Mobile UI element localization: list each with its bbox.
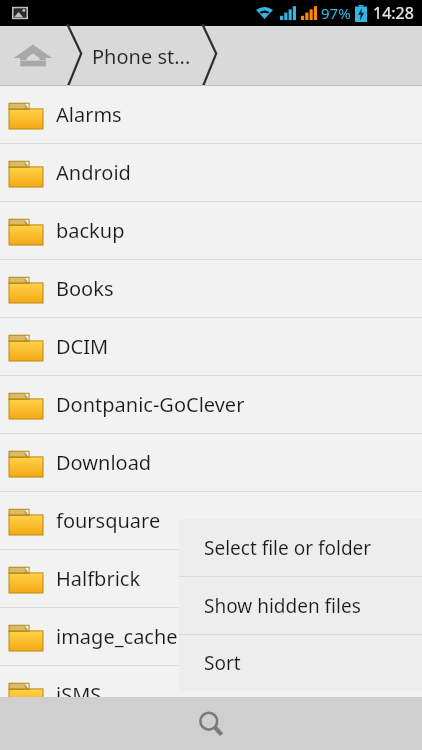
button[interactable]: Android xyxy=(0,144,422,201)
button[interactable]: Halfbrick xyxy=(0,550,422,607)
staticText: Sort xyxy=(204,650,241,676)
staticText: Download xyxy=(56,449,152,476)
staticText: Halfbrick xyxy=(56,565,141,592)
staticText: backup xyxy=(56,217,125,244)
staticText: foursquare xyxy=(56,507,161,534)
staticText: Show hidden files xyxy=(204,593,361,619)
button[interactable]: Home xyxy=(0,26,66,86)
staticText: 14:28 xyxy=(373,2,414,24)
staticText: Books xyxy=(56,275,114,302)
button[interactable]: Show hidden files xyxy=(179,577,422,634)
button[interactable]: Books xyxy=(0,260,422,317)
staticText: 97% xyxy=(321,3,351,23)
staticText: DCIM xyxy=(56,333,109,360)
staticText: Alarms xyxy=(56,101,122,128)
staticText: image_cache xyxy=(56,623,178,650)
button[interactable]: Sort xyxy=(179,635,422,691)
staticText: iSMS xyxy=(56,681,102,708)
staticText: Android xyxy=(56,159,131,186)
button[interactable]: DCIM xyxy=(0,318,422,375)
button[interactable]: Dontpanic-GoClever xyxy=(0,376,422,433)
button[interactable]: Download xyxy=(0,434,422,491)
staticText: Select file or folder xyxy=(204,535,372,561)
button[interactable]: iSMS xyxy=(0,666,422,723)
button[interactable]: backup xyxy=(0,202,422,259)
button[interactable]: Phone st... xyxy=(82,26,201,86)
button[interactable]: Alarms xyxy=(0,86,422,143)
button[interactable]: Select file or folder xyxy=(179,519,422,576)
staticText: Phone st... xyxy=(92,43,191,70)
button[interactable]: foursquare xyxy=(0,492,422,549)
button[interactable]: Search xyxy=(140,697,281,750)
staticText: Dontpanic-GoClever xyxy=(56,391,245,418)
button[interactable]: image_cache xyxy=(0,608,422,665)
